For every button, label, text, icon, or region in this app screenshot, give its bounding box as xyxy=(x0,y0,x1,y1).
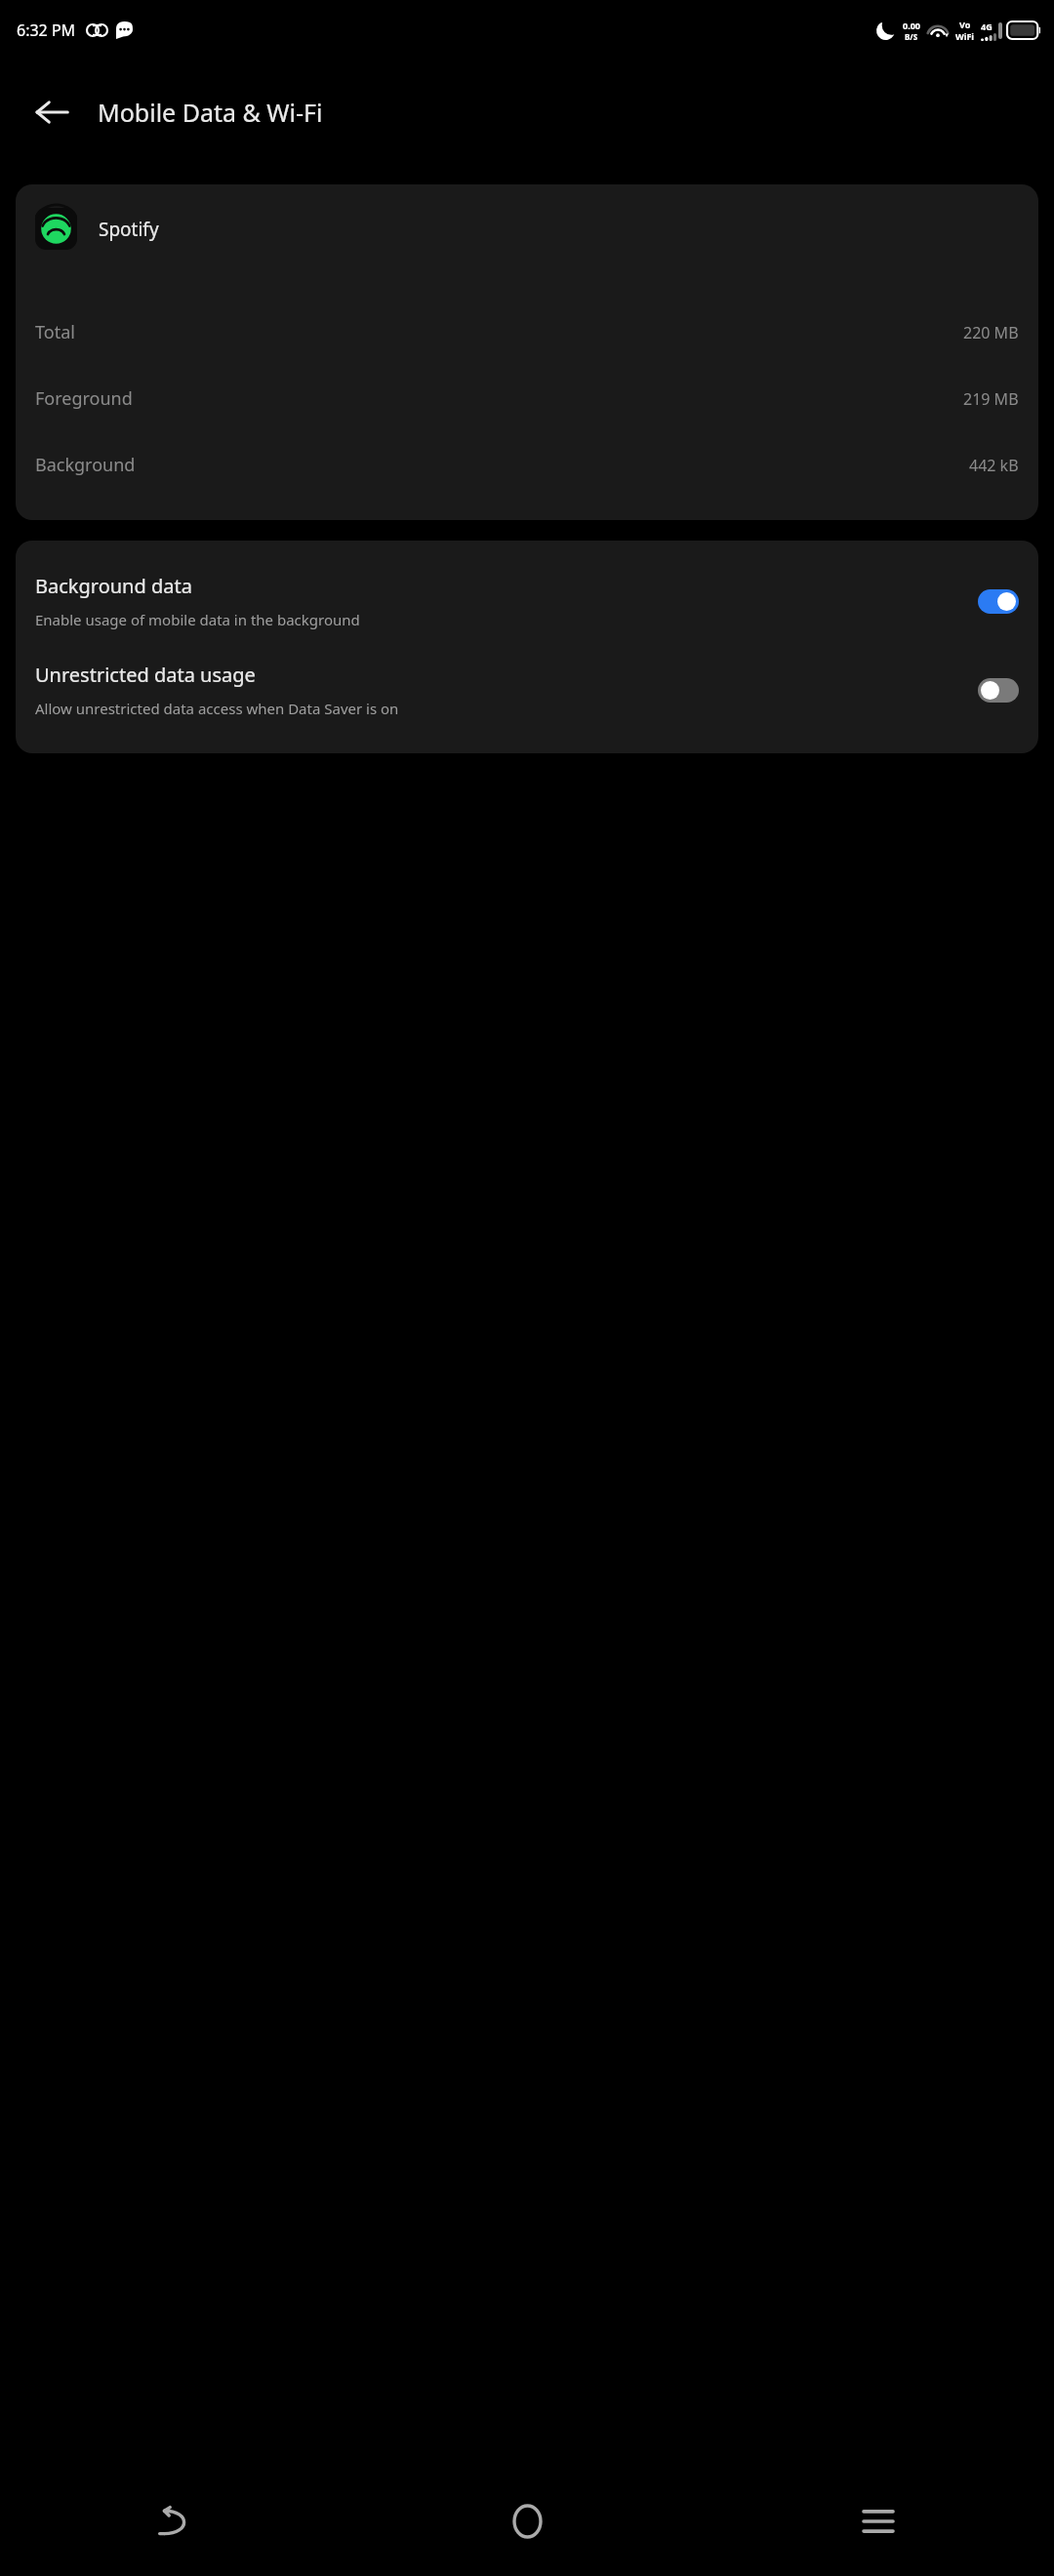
button[interactable]: Recents xyxy=(703,2467,1054,2576)
staticText: WiFi xyxy=(955,30,975,42)
button[interactable]: Spotify xyxy=(16,184,1038,260)
staticText: 4G xyxy=(981,20,993,32)
staticText: 219 MB xyxy=(963,388,1019,410)
staticText: Mobile Data & Wi-Fi xyxy=(98,96,323,129)
button[interactable]: Toggle on xyxy=(978,589,1019,614)
staticText: B/S xyxy=(905,31,918,42)
button[interactable]: Background xyxy=(16,453,1038,477)
staticText: Total xyxy=(35,320,75,344)
staticText: Enable usage of mobile data in the backg… xyxy=(35,610,360,629)
staticText: Vo xyxy=(959,19,971,30)
button[interactable]: Total xyxy=(16,320,1038,344)
button[interactable]: Background data xyxy=(16,541,1038,629)
staticText: 220 MB xyxy=(963,322,1019,343)
staticText: Spotify xyxy=(99,217,159,242)
staticText: Allow unrestricted data access when Data… xyxy=(35,699,399,718)
staticText: 442 kB xyxy=(969,455,1019,476)
staticText: 0.00 xyxy=(903,20,920,31)
staticText: Unrestricted data usage xyxy=(35,662,256,688)
button[interactable]: Home xyxy=(351,2467,703,2576)
button[interactable]: Back xyxy=(0,2467,351,2576)
staticText: 6:32 PM xyxy=(17,20,76,41)
staticText: Background data xyxy=(35,573,192,599)
staticText: Foreground xyxy=(35,386,133,411)
button[interactable]: Back xyxy=(21,82,82,142)
staticText: Background xyxy=(35,453,136,477)
button[interactable]: Foreground xyxy=(16,386,1038,411)
button[interactable]: Unrestricted data usage xyxy=(16,662,1038,753)
button[interactable]: Toggle off xyxy=(978,678,1019,703)
